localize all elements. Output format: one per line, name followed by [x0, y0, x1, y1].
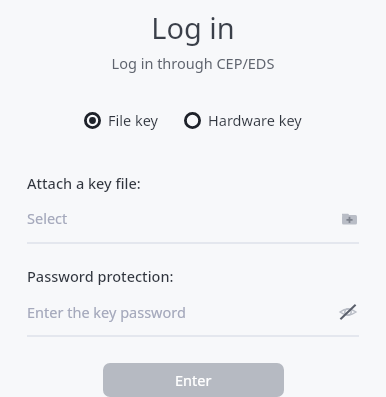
button[interactable]: File key [82, 106, 160, 134]
staticText: Log in [0, 8, 386, 47]
staticText: Enter the key password [27, 302, 337, 322]
staticText: File key [108, 110, 158, 130]
other: Attach key file [339, 208, 359, 228]
button[interactable]: Show password [337, 301, 359, 323]
staticText: Select [27, 208, 339, 228]
button[interactable]: Enter the key password [27, 299, 359, 325]
staticText: Enter [175, 370, 212, 390]
button[interactable]: Enter [103, 363, 284, 397]
button[interactable]: Select [27, 205, 359, 231]
staticText: Log in through CEP/EDS [0, 53, 386, 73]
staticText: Hardware key [208, 110, 302, 130]
button[interactable]: Hardware key [182, 106, 304, 134]
staticText: Attach a key file: [27, 173, 141, 193]
staticText: Password protection: [27, 266, 174, 286]
